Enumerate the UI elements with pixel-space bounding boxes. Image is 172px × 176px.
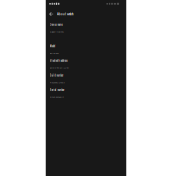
staticText: Build number <box>49 73 63 77</box>
staticText: Device name <box>49 23 62 27</box>
staticText: SM-R910 <box>49 51 58 55</box>
staticText: Bluetooth address <box>49 59 67 63</box>
staticText: R910XXU1AVG3 <box>49 81 64 84</box>
staticText: RFAR402VKNZ <box>49 95 63 99</box>
staticText: About watch <box>57 12 74 16</box>
staticText: Serial number <box>49 88 64 92</box>
staticText: Galaxy Watch5 <box>49 30 63 33</box>
button[interactable]: About watch <box>46 8 126 21</box>
button[interactable]: Model <box>46 42 126 57</box>
staticText: 58:D3:49:1C:AA:42 <box>49 66 68 69</box>
button[interactable]: Build number <box>46 71 126 86</box>
button[interactable]: Bluetooth address <box>46 57 126 71</box>
button[interactable]: Serial number <box>46 86 126 101</box>
button[interactable]: Device name <box>46 21 126 35</box>
staticText: Model <box>49 44 55 48</box>
